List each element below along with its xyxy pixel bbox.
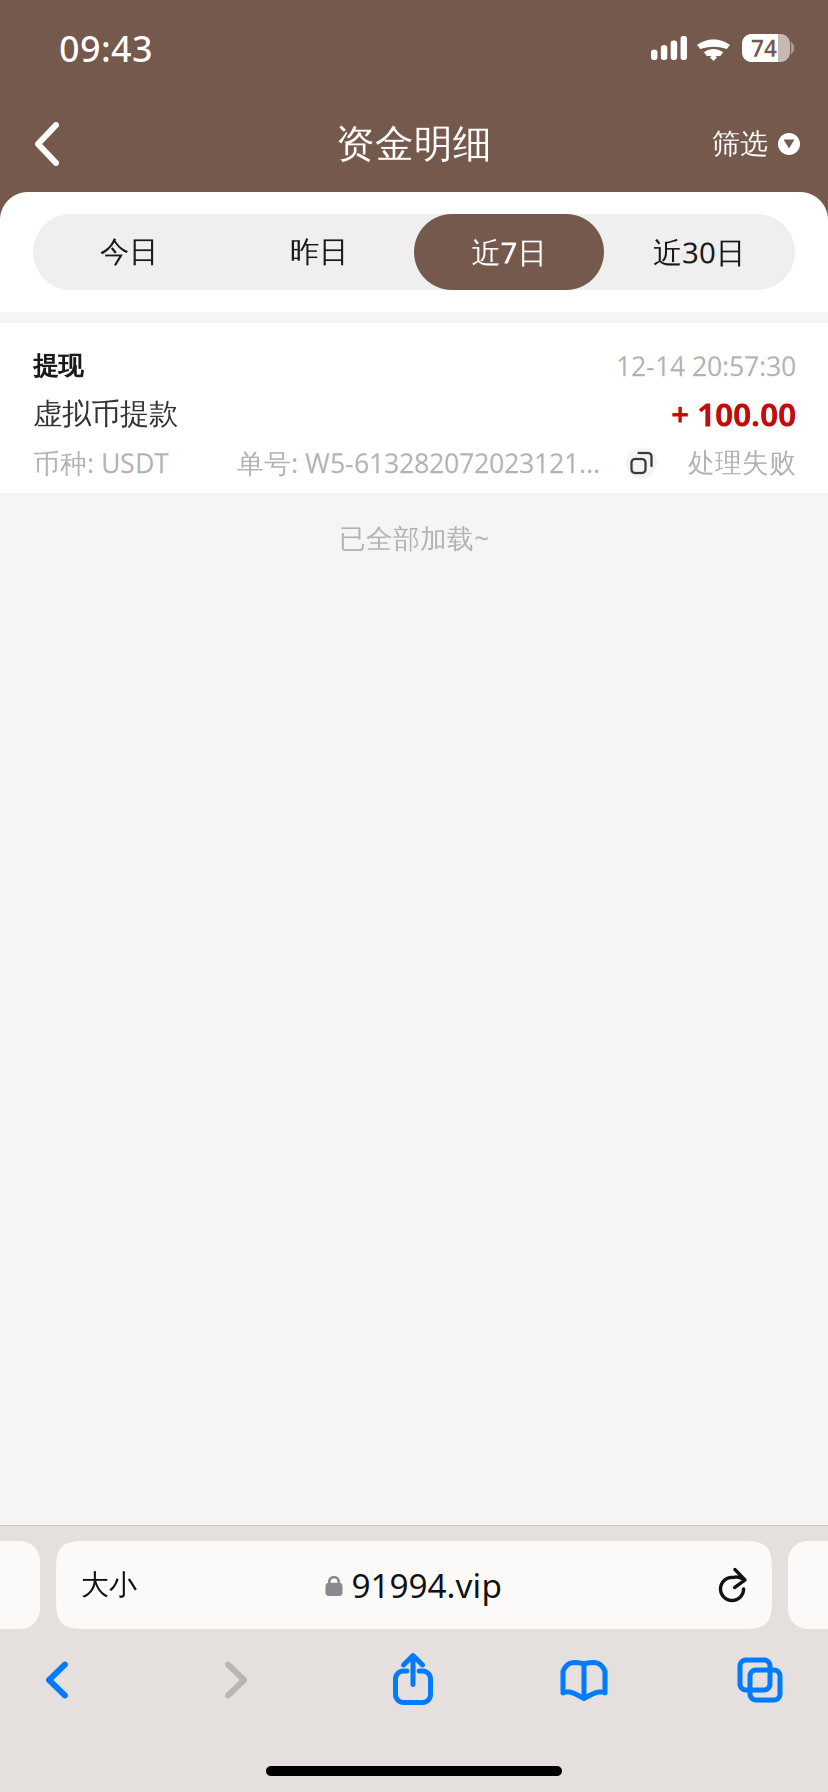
- button[interactable]: 近7日: [414, 214, 604, 290]
- button[interactable]: Forward: [179, 1640, 293, 1720]
- button[interactable]: Copy order number: [626, 443, 657, 483]
- staticText: 近7日: [471, 232, 546, 271]
- staticText: + 100.00: [671, 393, 796, 435]
- staticText: 12-14 20:57:30: [616, 348, 796, 384]
- button[interactable]: 91994.vip: [56, 1541, 772, 1629]
- staticText: 虚拟币提款: [33, 396, 178, 432]
- staticText: 近30日: [653, 232, 745, 271]
- button[interactable]: Back: [0, 96, 94, 192]
- button[interactable]: 昨日: [224, 214, 414, 290]
- button[interactable]: Share: [356, 1640, 470, 1720]
- staticText: 09:43: [59, 24, 153, 72]
- staticText: 提现: [33, 350, 83, 381]
- staticText: 筛选: [712, 127, 768, 161]
- staticText: 单号: W5-613282072023121...: [237, 445, 600, 481]
- staticText: 今日: [100, 234, 158, 270]
- button[interactable]: 筛选: [712, 96, 828, 192]
- button[interactable]: 提现: [0, 323, 828, 493]
- staticText: 资金明细: [336, 120, 492, 168]
- button[interactable]: 今日: [34, 214, 224, 290]
- staticText: 74: [751, 33, 777, 63]
- staticText: 币种: USDT: [33, 445, 169, 481]
- staticText: 91994.vip: [351, 1563, 502, 1607]
- staticText: 处理失败: [688, 447, 796, 479]
- staticText: 大小: [81, 1568, 137, 1602]
- button[interactable]: 近30日: [604, 214, 794, 290]
- staticText: 昨日: [290, 234, 348, 270]
- button[interactable]: Back: [0, 1640, 114, 1720]
- button[interactable]: Tabs: [703, 1640, 817, 1720]
- button[interactable]: Bookmarks: [527, 1640, 641, 1720]
- staticText: 已全部加载~: [339, 520, 489, 556]
